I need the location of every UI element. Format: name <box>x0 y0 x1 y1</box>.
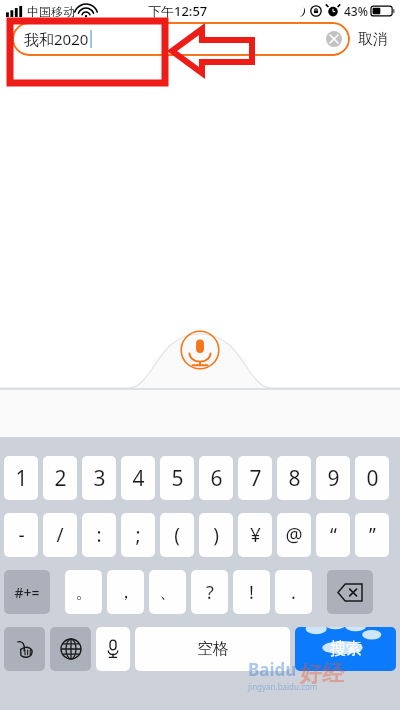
staticText: ) <box>213 522 219 548</box>
staticText: ! <box>249 580 254 605</box>
staticText: 中国移动 <box>27 4 75 19</box>
button[interactable]: #+= <box>4 570 50 614</box>
button[interactable]: “ <box>316 513 350 557</box>
button[interactable]: - <box>4 513 38 557</box>
staticText: 2 <box>54 464 67 493</box>
button[interactable]: Clear <box>326 31 342 47</box>
button[interactable]: / <box>43 513 77 557</box>
staticText: : <box>96 522 102 548</box>
staticText: ¥ <box>250 522 261 548</box>
button[interactable]: 3 <box>82 456 116 500</box>
staticText: jingyan.baidu.com <box>248 681 318 692</box>
staticText: ( <box>174 522 180 548</box>
button[interactable]: 0 <box>355 456 389 500</box>
button[interactable]: 取消 <box>358 30 388 49</box>
staticText: “ <box>330 522 337 548</box>
button[interactable]: 4 <box>121 456 155 500</box>
button[interactable]: : <box>82 513 116 557</box>
button[interactable]: ! <box>233 570 270 614</box>
button[interactable]: 7 <box>238 456 272 500</box>
staticText: ; <box>135 522 141 548</box>
button[interactable]: 。 <box>65 570 102 614</box>
staticText: 、 <box>159 581 177 604</box>
button[interactable]: Switch language <box>50 627 91 671</box>
button[interactable]: ” <box>355 513 389 557</box>
staticText: 6 <box>210 464 223 493</box>
staticText: ， <box>117 581 135 604</box>
button[interactable]: 我和2020 <box>12 22 350 56</box>
staticText: - <box>18 522 25 548</box>
staticText: 1 <box>15 464 28 493</box>
button[interactable]: 8 <box>277 456 311 500</box>
button[interactable]: . <box>275 570 312 614</box>
button[interactable]: 5 <box>160 456 194 500</box>
staticText: 43% <box>344 3 368 19</box>
button[interactable]: Voice input <box>180 330 220 370</box>
staticText: 好经 <box>300 660 344 688</box>
staticText: ” <box>369 522 376 548</box>
button[interactable]: ) <box>199 513 233 557</box>
button[interactable]: @ <box>277 513 311 557</box>
button[interactable]: 、 <box>149 570 186 614</box>
staticText: 7 <box>249 464 262 493</box>
staticText: 3 <box>93 464 106 493</box>
staticText: 。 <box>75 581 93 604</box>
staticText: 搜索 <box>330 639 362 659</box>
staticText: 空格 <box>197 639 229 659</box>
staticText: 9 <box>327 464 340 493</box>
button[interactable]: 2 <box>43 456 77 500</box>
staticText: 5 <box>171 464 184 493</box>
button[interactable]: ? <box>191 570 228 614</box>
staticText: . <box>291 580 296 605</box>
staticText: 下午12:57 <box>148 2 208 20</box>
staticText: 8 <box>288 464 301 493</box>
staticText: 取消 <box>358 30 388 49</box>
button[interactable]: Backspace <box>327 570 373 614</box>
button[interactable]: 1 <box>4 456 38 500</box>
button[interactable]: ; <box>121 513 155 557</box>
button[interactable]: 9 <box>316 456 350 500</box>
button[interactable]: Handwriting <box>4 627 45 671</box>
staticText: @ <box>285 522 303 548</box>
staticText: ? <box>206 580 214 605</box>
button[interactable]: 搜索 <box>295 627 396 671</box>
staticText: / <box>56 522 64 548</box>
button[interactable]: 空格 <box>135 627 290 671</box>
button[interactable]: Voice <box>96 627 130 671</box>
button[interactable]: 6 <box>199 456 233 500</box>
staticText: 0 <box>366 464 379 493</box>
staticText: #+= <box>14 583 40 602</box>
staticText: Baidu <box>248 658 297 681</box>
button[interactable]: ( <box>160 513 194 557</box>
staticText: 4 <box>132 464 145 493</box>
button[interactable]: ¥ <box>238 513 272 557</box>
button[interactable]: ， <box>107 570 144 614</box>
staticText: 我和2020 <box>24 29 89 49</box>
